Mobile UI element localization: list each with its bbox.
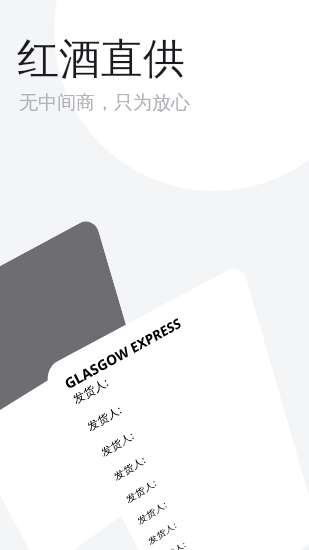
staticText: 发货人: [98,428,136,459]
staticText: 红酒直供 [17,33,185,86]
staticText: 发货人: [123,476,158,506]
staticText: 发货人: [146,519,178,547]
staticText: 发货人: [111,453,148,483]
staticText: 无中间商，只为放心 [19,91,190,115]
staticText: 发货人: [135,498,169,527]
staticText: 发货人: [70,374,111,407]
staticText: 发货人: [156,538,187,550]
staticText: GLASGOW EXPRESS [61,313,184,393]
staticText: 发货人: [84,402,124,434]
